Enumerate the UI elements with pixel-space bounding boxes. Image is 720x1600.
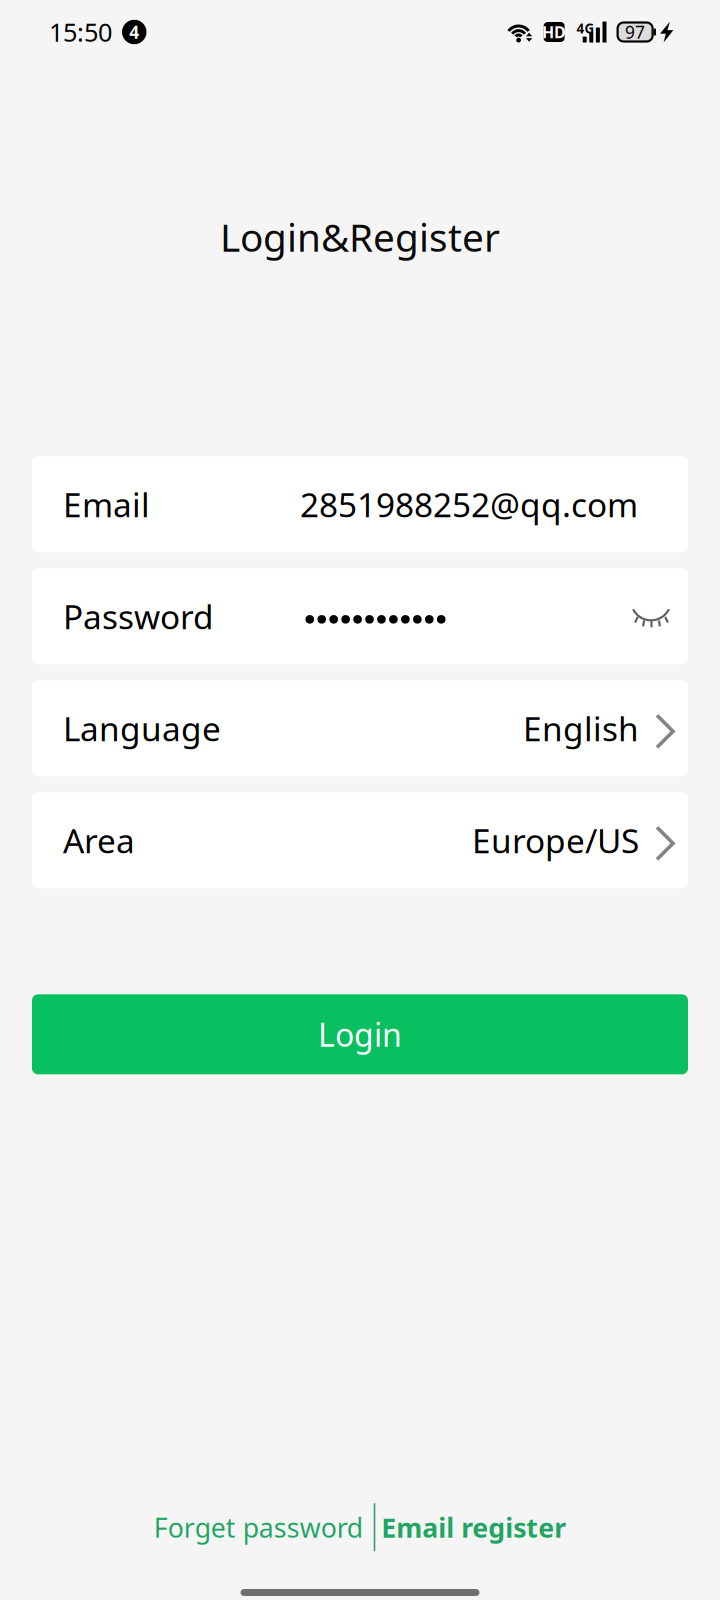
- staticText: Login: [318, 1013, 402, 1056]
- staticText: Login&Register: [220, 211, 500, 262]
- button[interactable]: Login: [32, 994, 688, 1074]
- button[interactable]: Area: [32, 792, 688, 888]
- staticText: Europe/US: [472, 818, 639, 862]
- staticText: 97: [625, 20, 645, 43]
- staticText: Email: [63, 482, 150, 526]
- staticText: Area: [63, 818, 135, 862]
- button[interactable]: Show password: [623, 590, 675, 642]
- button[interactable]: Email register: [375, 1499, 566, 1556]
- staticText: Forget password: [154, 1510, 363, 1545]
- staticText: English: [523, 706, 639, 750]
- staticText: HD: [542, 21, 566, 43]
- staticText: Password: [63, 594, 214, 638]
- staticText: 4G: [577, 19, 595, 37]
- staticText: Email register: [381, 1510, 566, 1545]
- staticText: 15:50: [49, 15, 112, 49]
- staticText: Language: [63, 706, 221, 750]
- button[interactable]: Forget password: [154, 1499, 374, 1556]
- button[interactable]: Language: [32, 680, 688, 776]
- button[interactable]: Email: [32, 456, 688, 552]
- staticText: 2851988252@qq.com: [300, 482, 638, 526]
- staticText: 4: [129, 20, 139, 43]
